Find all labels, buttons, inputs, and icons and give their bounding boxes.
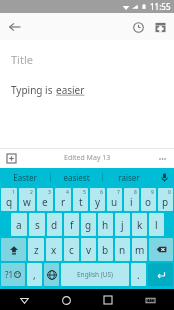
staticText: m [135,243,145,257]
staticText: Easter [13,172,37,183]
staticText: n [119,243,126,257]
staticText: g [85,218,92,232]
staticText: u [111,195,118,209]
staticText: 9 [151,189,154,196]
button[interactable]: a [11,213,27,236]
button[interactable]: 5 [73,188,88,211]
staticText: k [137,218,143,232]
staticText: 11:55 [150,1,171,12]
staticText: v [86,243,92,257]
staticText: c [69,243,74,257]
button[interactable]: 4 [55,188,71,211]
button[interactable]: Typing is [11,83,163,97]
button[interactable]: More options [154,150,170,166]
button[interactable]: d [47,213,62,236]
button[interactable]: Title [11,52,163,67]
button[interactable]: . [131,263,146,286]
button[interactable]: Home [56,290,76,310]
button[interactable]: Easter [0,168,50,187]
button[interactable]: Archive [149,16,171,38]
staticText: ?1 [5,269,14,280]
staticText: Edited May 13 [64,153,111,163]
staticText: l [155,218,158,232]
button[interactable]: 8 [124,188,139,211]
button[interactable]: Enter [148,263,173,286]
staticText: b [102,243,109,257]
button[interactable]: h [98,213,113,236]
staticText: z [34,243,39,257]
button[interactable]: , [27,263,42,286]
button[interactable]: Back [4,16,26,38]
button[interactable]: Voice input [154,168,174,187]
staticText: . [137,268,140,282]
staticText: 4 [66,189,69,196]
staticText: w [23,195,31,209]
button[interactable]: Reminder [127,16,149,38]
staticText: raiser [118,172,140,183]
staticText: q [6,195,13,209]
staticText: easier [56,83,85,97]
button[interactable]: n [115,238,130,261]
button[interactable]: Back [14,290,34,310]
button[interactable]: 2 [19,188,35,211]
staticText: 2 [30,189,33,196]
button[interactable]: raiser [103,168,154,187]
button[interactable]: f [64,213,79,236]
button[interactable]: l [149,213,164,236]
button[interactable]: 1 [1,188,17,211]
button[interactable]: Symbols [1,263,25,286]
button[interactable]: 9 [141,188,156,211]
button[interactable]: Shift [1,238,26,261]
staticText: i [130,195,133,209]
staticText: r [61,195,66,209]
button[interactable]: x [46,238,62,261]
button[interactable]: English (US) [61,263,129,286]
button[interactable]: 3 [37,188,53,211]
staticText: a [16,218,22,232]
button[interactable]: 6 [90,188,105,211]
button[interactable]: Backspace [149,238,173,261]
staticText: e [42,195,48,209]
button[interactable]: g [81,213,96,236]
button[interactable]: Recent apps [98,290,118,310]
staticText: d [51,218,58,232]
button[interactable]: 7 [107,188,122,211]
staticText: 5 [83,189,86,196]
staticText: , [33,268,36,282]
staticText: 7 [117,189,120,196]
button[interactable]: easiest [51,168,102,187]
button[interactable]: c [64,238,79,261]
staticText: j [121,218,124,232]
button[interactable]: z [28,238,44,261]
button[interactable]: b [98,238,113,261]
staticText: p [162,195,169,209]
staticText: 1 [12,189,15,196]
button[interactable]: j [115,213,130,236]
button[interactable]: Change language [44,263,59,286]
button[interactable]: k [132,213,147,236]
staticText: f [70,218,74,232]
staticText: 0 [168,189,171,196]
staticText: o [145,195,152,209]
staticText: h [102,218,109,232]
staticText: x [51,243,57,257]
button[interactable]: m [132,238,147,261]
staticText: Title [11,52,33,67]
button[interactable]: s [29,213,45,236]
staticText: Typing is [11,83,56,97]
staticText: y [95,195,101,209]
staticText: s [35,218,40,232]
staticText: 6 [100,189,103,196]
button[interactable]: Keyboard [140,290,160,310]
staticText: 8 [134,189,137,196]
staticText: 3 [48,189,51,196]
button[interactable]: Add [3,150,19,166]
staticText: t [79,195,83,209]
button[interactable]: 0 [158,188,173,211]
button[interactable]: v [81,238,96,261]
staticText: easiest [63,172,90,183]
staticText: English (US) [77,270,114,279]
